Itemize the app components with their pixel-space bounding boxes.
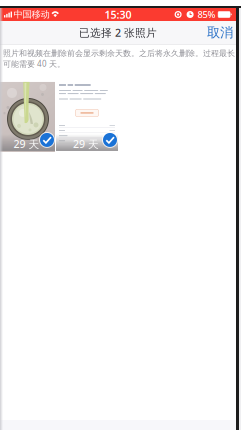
staticText: 中国移动 (13, 9, 49, 20)
staticText: 85% (198, 8, 216, 21)
staticText: 29 天 (73, 137, 99, 151)
button[interactable]: 29 天 (0, 82, 55, 152)
button[interactable]: 29 天 (56, 82, 118, 152)
staticText: 照片和视频在删除前会显示剩余天数。之后将永久删除。过程最长可能需要 40 天。 (3, 48, 235, 69)
staticText: 取消 (207, 24, 233, 41)
button[interactable]: 取消 (202, 20, 238, 45)
staticText: 15:30 (104, 7, 131, 22)
staticText: 已选择 2 张照片 (79, 25, 157, 40)
staticText: 29 天 (13, 137, 39, 151)
